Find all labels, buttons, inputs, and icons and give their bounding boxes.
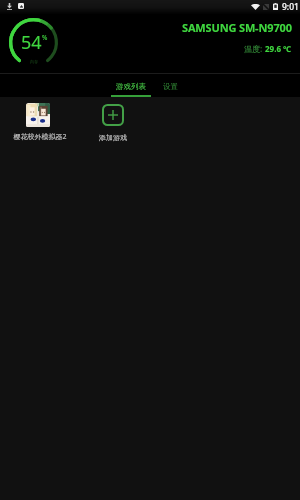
staticText: 54 bbox=[21, 30, 42, 55]
button[interactable]: 游戏列表 bbox=[111, 73, 151, 97]
staticText: 樱花校外模拟器2 bbox=[13, 132, 67, 142]
staticText: 游戏列表 bbox=[116, 82, 146, 91]
staticText: 内存 bbox=[30, 59, 38, 64]
button[interactable]: 添加游戏 bbox=[75, 97, 151, 142]
staticText: 温度: bbox=[244, 43, 265, 54]
staticText: 添加游戏 bbox=[99, 133, 127, 142]
staticText: % bbox=[42, 33, 48, 42]
staticText: SAMSUNG SM-N9700 bbox=[182, 20, 292, 35]
button[interactable]: 樱花校外模拟器2 bbox=[0, 97, 76, 142]
staticText: 29.6 ℃ bbox=[265, 43, 292, 54]
staticText: 9:01 bbox=[282, 1, 299, 13]
button[interactable]: 设置 bbox=[150, 73, 190, 97]
staticText: 设置 bbox=[163, 82, 178, 91]
